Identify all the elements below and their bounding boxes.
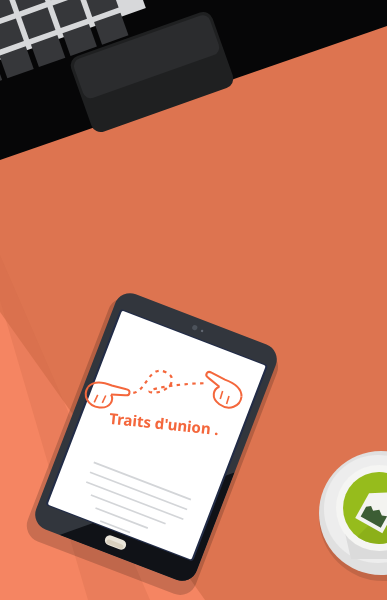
button[interactable]: Traits d'union tablet illustration xyxy=(0,0,387,600)
